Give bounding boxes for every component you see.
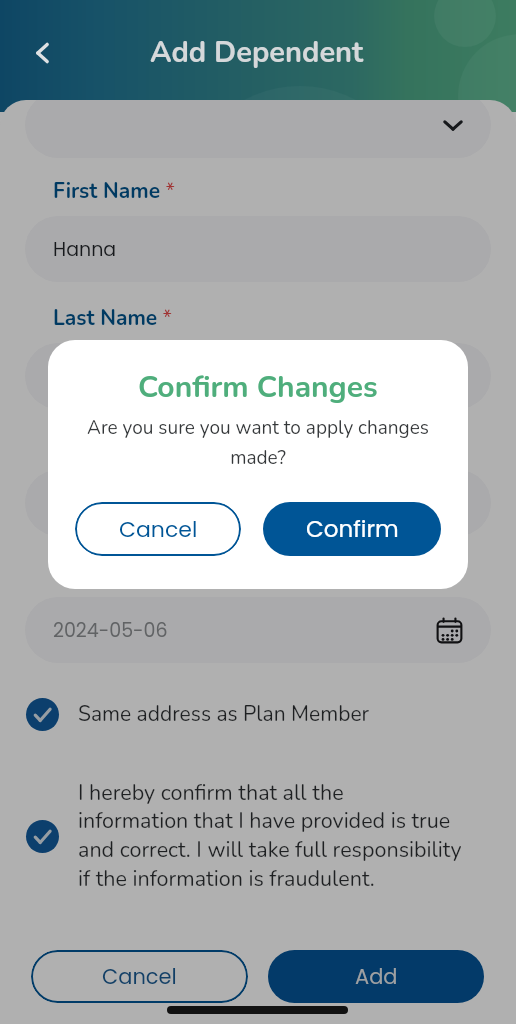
button[interactable]: Cancel — [31, 950, 248, 1003]
staticText: Hanna — [53, 236, 117, 263]
staticText: Cancel — [119, 514, 198, 545]
button[interactable]: Add — [268, 950, 484, 1003]
staticText: Same address as Plan Member — [78, 700, 370, 729]
staticText: Confirm Changes — [138, 367, 378, 408]
staticText: Confirm — [306, 513, 399, 545]
button[interactable]: I hereby confirm that all the informatio… — [26, 778, 466, 894]
button[interactable]: Back — [20, 30, 66, 76]
staticText: Add Dependent — [150, 33, 364, 73]
button[interactable]: 2024-05-06 — [25, 597, 491, 663]
button[interactable] — [25, 343, 491, 409]
staticText: Add — [355, 962, 398, 991]
button[interactable]: Confirm — [263, 502, 441, 556]
button[interactable] — [25, 470, 491, 536]
button[interactable]: Same address as Plan Member — [26, 698, 426, 731]
button[interactable]: Relationship — [25, 100, 491, 158]
staticText: Are you sure you want to apply changes m… — [82, 415, 434, 471]
button[interactable]: Pick date — [434, 615, 464, 645]
staticText: 2024-05-06 — [53, 617, 168, 644]
button[interactable]: Cancel — [75, 502, 241, 556]
staticText: First Name * — [53, 177, 175, 206]
staticText: I hereby confirm that all the informatio… — [78, 778, 462, 894]
staticText: Gender * — [53, 431, 140, 460]
staticText: Cancel — [102, 962, 177, 991]
button[interactable]: Hanna — [25, 216, 491, 282]
staticText: Date of Birth * — [53, 558, 195, 587]
staticText: Last Name * — [53, 304, 173, 333]
